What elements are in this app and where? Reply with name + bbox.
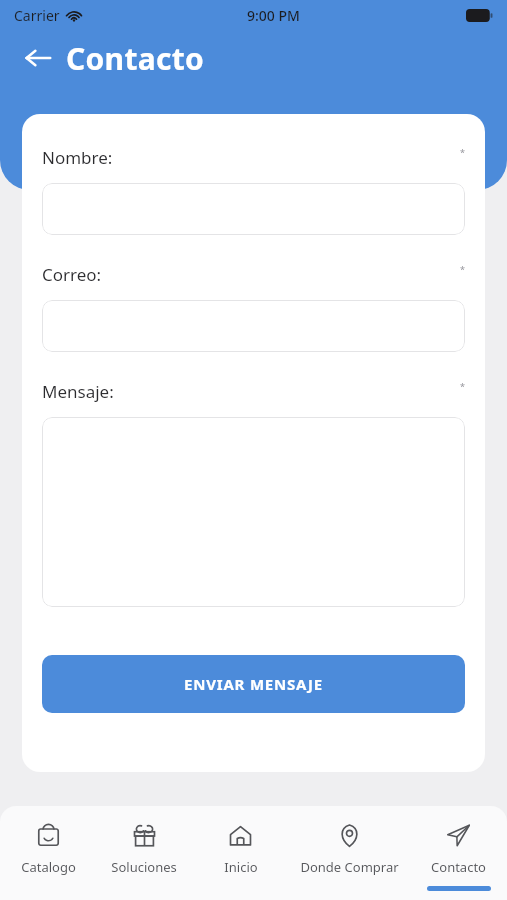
button[interactable] [42,417,465,607]
staticText: Carrier [14,6,60,25]
button[interactable]: ENVIAR MENSAJE [42,655,465,713]
staticText: * [460,263,465,275]
staticText: Contacto [66,38,205,79]
staticText: Inicio [224,858,258,876]
staticText: * [460,380,465,392]
staticText: * [460,146,465,158]
staticText: Contacto [431,858,486,876]
staticText: Catalogo [21,858,76,876]
staticText: Soluciones [111,858,177,876]
staticText: Mensaje: [42,380,114,403]
staticText: Donde Comprar [300,858,399,876]
button[interactable]: Inicio [192,806,289,900]
button[interactable]: Soluciones [96,806,192,900]
staticText: ENVIAR MENSAJE [184,674,324,694]
staticText: 9:00 PM [247,6,300,25]
button[interactable]: Catalogo [0,806,96,900]
staticText: Correo: [42,263,102,286]
button[interactable] [42,300,465,352]
button[interactable]: Donde Comprar [289,806,410,900]
button[interactable] [42,183,465,235]
button[interactable]: Contacto [410,806,507,900]
button[interactable]: Back [18,38,58,78]
staticText: Nombre: [42,146,113,169]
